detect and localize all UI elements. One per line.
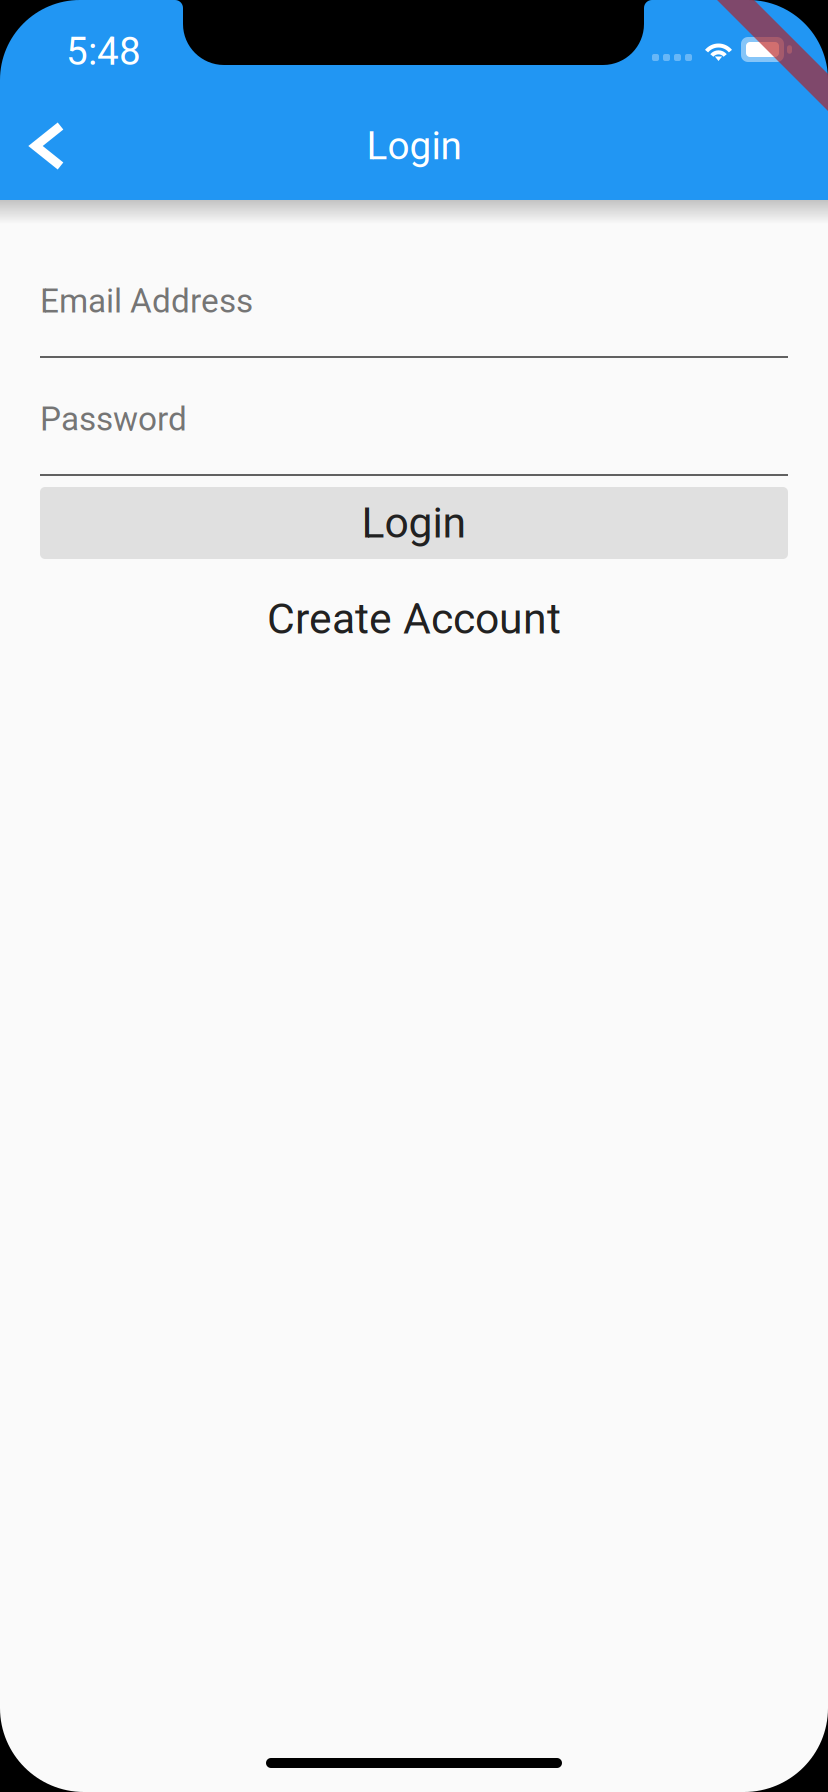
button[interactable]: Back (0, 92, 96, 200)
staticText: Create Account (267, 594, 561, 644)
staticText: Login (366, 123, 461, 169)
button[interactable]: Login (40, 487, 788, 559)
staticText: Login (361, 498, 466, 548)
staticText: Password (40, 399, 187, 439)
staticText: Email Address (40, 281, 253, 321)
button[interactable]: Create Account (40, 559, 788, 667)
staticText: 5:48 (66, 29, 141, 74)
